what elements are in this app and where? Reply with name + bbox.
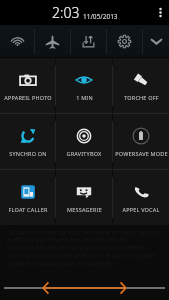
button[interactable]: FLOAT CALLER (0, 170, 55, 225)
staticText: 1 MIN (76, 94, 93, 101)
button[interactable]: APPEL VOCAL (113, 170, 169, 225)
button[interactable]: GRAVITYBOX (56, 114, 112, 169)
button[interactable]: POWERSAVE MODE (113, 114, 169, 169)
button[interactable]: Settings (107, 25, 142, 58)
staticText: 11/05/2013 (83, 12, 118, 21)
button[interactable]: Mobile data (71, 25, 106, 58)
staticText: APPAREIL PHOTO (4, 94, 52, 101)
button[interactable]: MESSAGERIE (56, 170, 112, 225)
staticText: MESSAGERIE (67, 206, 102, 213)
button[interactable]: SYNCHRO ON (0, 114, 55, 169)
staticText: TORCHE OFF (124, 94, 159, 101)
staticText: POWERSAVE MODE (115, 150, 168, 157)
staticText: 2:03 (52, 3, 80, 22)
staticText: APPEL VOCAL (122, 206, 160, 213)
button[interactable]: TORCHE OFF (113, 58, 169, 113)
staticText: GRAVITYBOX (66, 150, 102, 157)
button[interactable]: More options (151, 0, 169, 25)
button[interactable]: 1 MIN (56, 58, 112, 113)
button[interactable]: Wi-Fi (0, 25, 34, 58)
staticText: FLOAT CALLER (8, 206, 48, 213)
button[interactable]: Expand (143, 25, 169, 58)
staticText: SYNCHRO ON (9, 150, 47, 157)
button[interactable]: Airplane mode (35, 25, 70, 58)
button[interactable]: APPAREIL PHOTO (0, 58, 55, 113)
